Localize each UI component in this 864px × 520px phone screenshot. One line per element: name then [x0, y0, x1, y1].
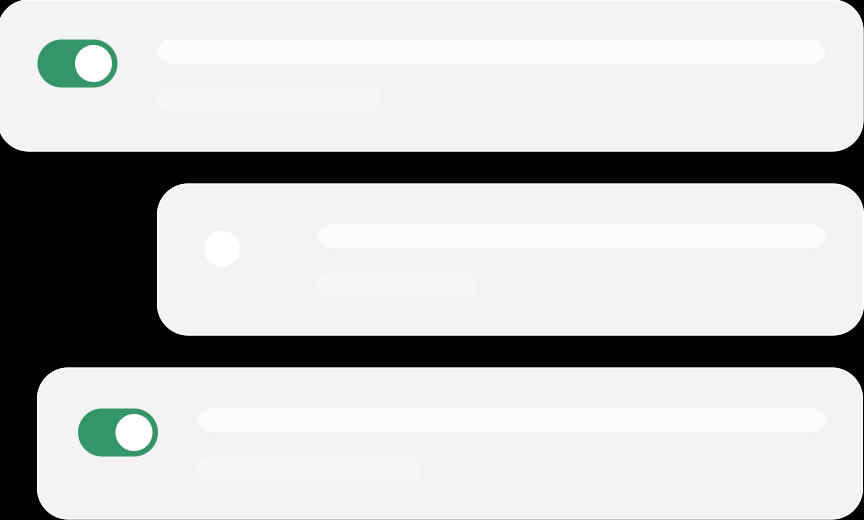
button[interactable]: [0, 0, 864, 520]
button[interactable]: [0, 0, 864, 520]
button[interactable]: Toggle setting: [37, 39, 117, 87]
button[interactable]: Toggle setting: [78, 408, 158, 456]
button[interactable]: [0, 0, 864, 520]
